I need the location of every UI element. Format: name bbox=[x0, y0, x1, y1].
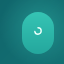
button[interactable]: Activity bbox=[22, 12, 54, 54]
other: Activity bbox=[34, 27, 42, 39]
